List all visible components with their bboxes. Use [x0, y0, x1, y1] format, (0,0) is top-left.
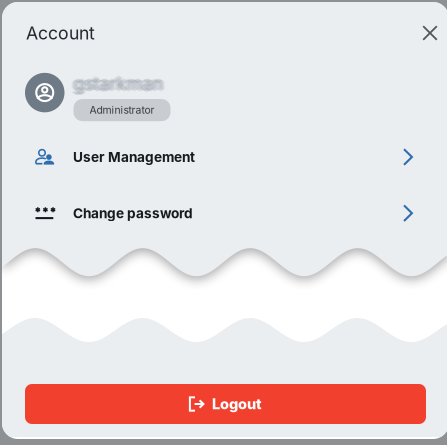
staticText: Logout	[212, 395, 262, 413]
staticText: gstarkman	[73, 73, 163, 94]
staticText: User Management	[73, 149, 195, 165]
staticText: gstarkman	[75, 73, 165, 94]
button[interactable]: Close	[413, 16, 447, 50]
staticText: Account	[26, 22, 95, 44]
staticText: Administrator	[89, 104, 154, 116]
button[interactable]: Logout	[25, 384, 426, 424]
staticText: gstarkman	[73, 74, 163, 96]
staticText: gstarkman	[72, 74, 162, 95]
staticText: Change password	[73, 205, 193, 221]
staticText: gstarkman	[71, 73, 161, 94]
staticText: gstarkman	[72, 72, 162, 93]
staticText: gstarkman	[70, 73, 160, 94]
staticText: gstarkman	[73, 71, 163, 93]
staticText: gstarkman	[75, 74, 165, 95]
staticText: gstarkman	[75, 72, 165, 93]
button[interactable]: User Management	[2, 129, 447, 185]
staticText: gstarkman	[76, 73, 166, 94]
button[interactable]: Change password	[2, 185, 447, 241]
